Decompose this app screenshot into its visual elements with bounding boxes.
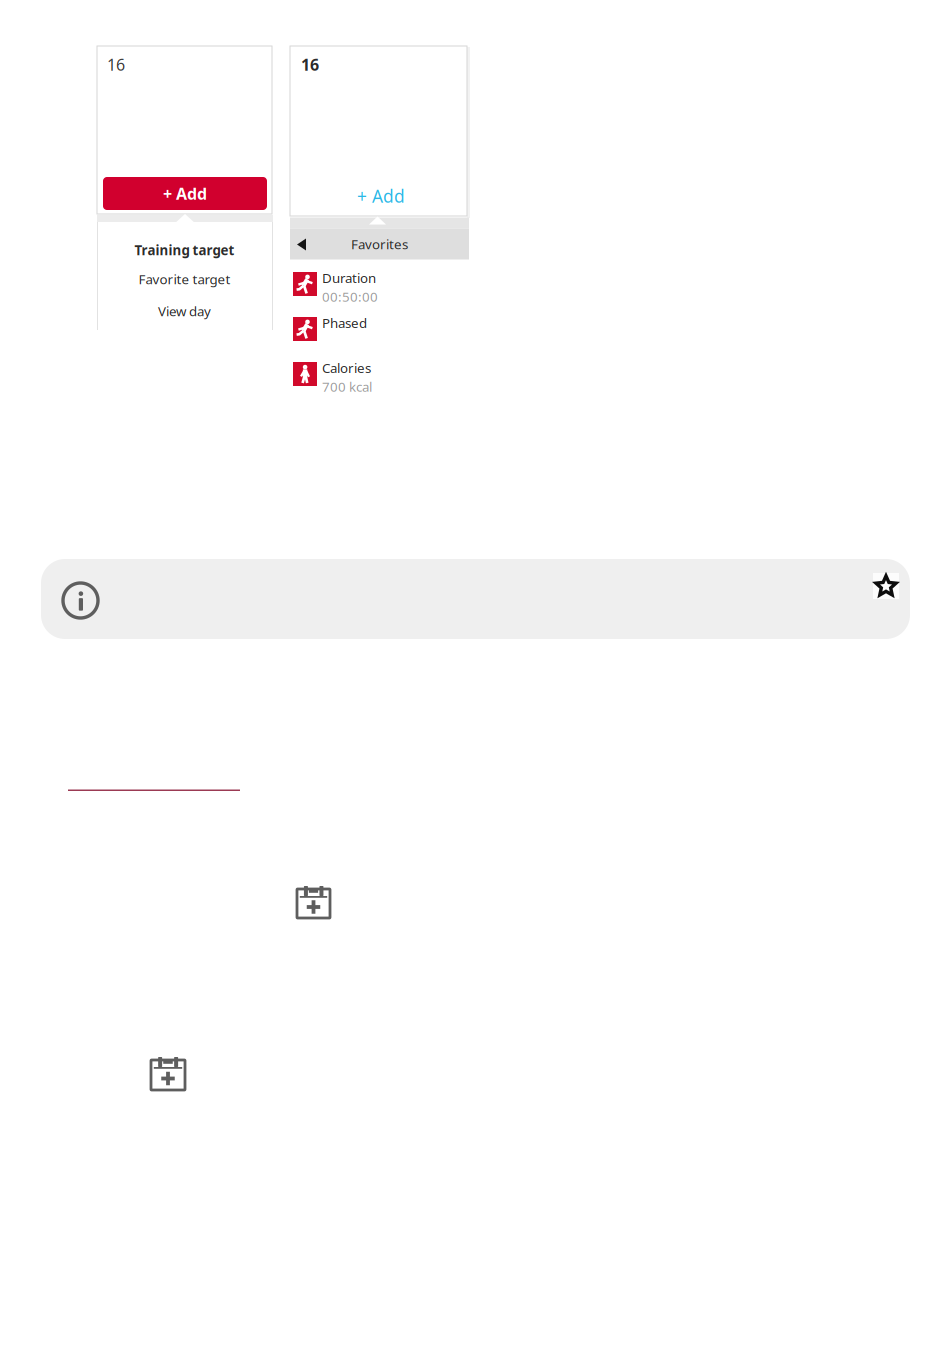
staticText: View day xyxy=(158,302,211,320)
button[interactable]: Calories xyxy=(293,362,468,402)
staticText: Duration xyxy=(322,269,376,287)
button[interactable]: Add to calendar xyxy=(151,1057,185,1090)
button[interactable]: Favorites xyxy=(290,212,469,254)
button[interactable]: Training target xyxy=(97,238,272,262)
button[interactable]: Phased xyxy=(293,317,468,357)
button[interactable]: Learn more xyxy=(68,769,240,791)
staticText: 16 xyxy=(107,54,125,75)
button[interactable]: Duration xyxy=(293,272,468,312)
staticText: Favorites xyxy=(351,235,408,253)
button[interactable]: Favorite target xyxy=(97,267,272,291)
button[interactable]: Add to calendar xyxy=(297,886,330,918)
staticText: 16 xyxy=(301,54,319,75)
staticText: + Add xyxy=(357,184,405,207)
button[interactable]: Favorite xyxy=(873,573,899,599)
button[interactable]: View day xyxy=(97,299,272,323)
button[interactable]: + Add xyxy=(331,184,431,208)
staticText: Training target xyxy=(134,241,234,259)
button[interactable]: Information xyxy=(61,581,100,620)
staticText: + Add xyxy=(163,183,207,204)
staticText: 700 kcal xyxy=(322,378,372,395)
staticText: Calories xyxy=(322,359,371,377)
staticText: Favorite target xyxy=(138,270,230,288)
staticText: Phased xyxy=(322,314,367,332)
button[interactable]: + Add xyxy=(103,177,267,210)
staticText: 00:50:00 xyxy=(322,288,378,305)
